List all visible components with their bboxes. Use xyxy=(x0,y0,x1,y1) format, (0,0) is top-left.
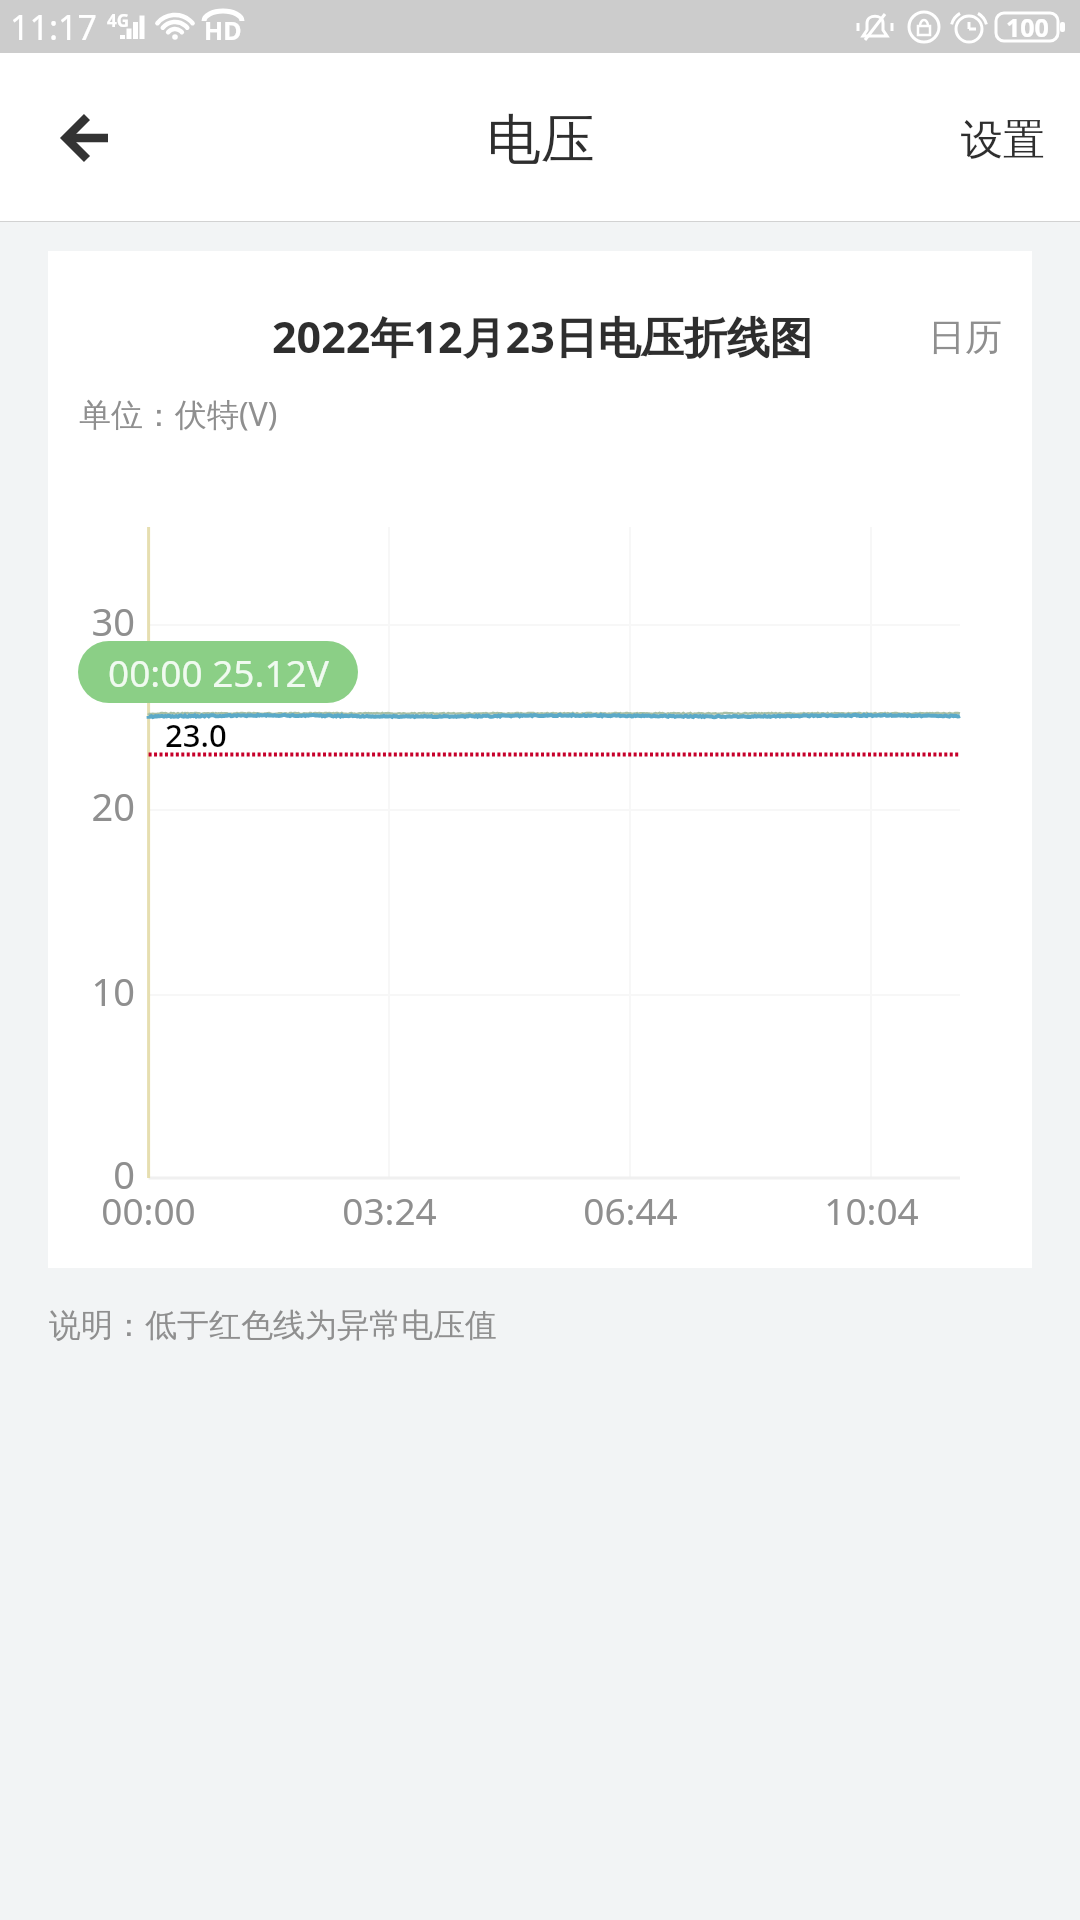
staticText: 23.0 xyxy=(165,714,227,756)
staticText: 30 xyxy=(91,595,135,647)
staticText: 100 xyxy=(1006,10,1049,44)
staticText: 10 xyxy=(91,965,135,1017)
staticText: 电压 xyxy=(487,106,595,174)
staticText: 说明：低于红色线为异常电压值 xyxy=(49,1305,497,1345)
staticText: 0 xyxy=(113,1148,135,1200)
staticText: HD xyxy=(204,13,242,47)
staticText: 4G xyxy=(107,9,130,32)
staticText: 单位：伏特(V) xyxy=(79,392,278,436)
staticText: 00:00 25.12V xyxy=(108,647,329,697)
staticText: 20 xyxy=(91,780,135,832)
staticText: 06:44 xyxy=(583,1185,678,1235)
button[interactable]: 00:00 25.12V xyxy=(78,641,358,703)
staticText: 00:00 xyxy=(101,1185,196,1235)
button[interactable]: 日历 xyxy=(912,304,1018,371)
staticText: 日历 xyxy=(928,314,1002,361)
staticText: 设置 xyxy=(961,114,1045,167)
staticText: 10:04 xyxy=(824,1185,919,1235)
staticText: 2022年12月23日电压折线图 xyxy=(272,307,813,366)
button[interactable]: Back xyxy=(29,83,139,193)
staticText: 03:24 xyxy=(342,1185,437,1235)
button[interactable]: 设置 xyxy=(922,86,1080,195)
staticText: 11:17 xyxy=(10,4,97,50)
